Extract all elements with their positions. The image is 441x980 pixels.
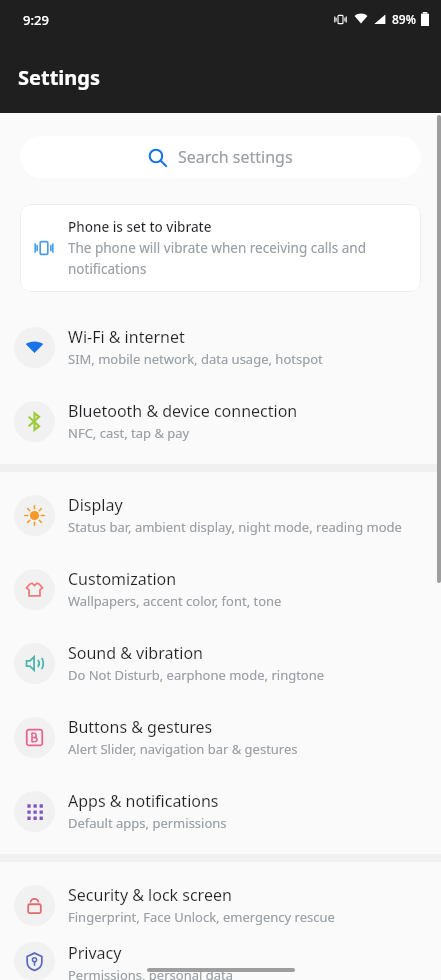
staticText: Apps & notifications (68, 790, 219, 812)
button[interactable]: Apps & notifications (0, 774, 441, 848)
staticText: Do Not Disturb, earphone mode, ringtone (68, 666, 325, 684)
staticText: Default apps, permissions (68, 814, 227, 832)
staticText: Security & lock screen (68, 884, 232, 906)
staticText: Settings (18, 64, 100, 91)
staticText: SIM, mobile network, data usage, hotspot (68, 350, 323, 368)
staticText: Permissions, personal data (68, 966, 233, 980)
staticText: 9:29 (23, 11, 49, 29)
staticText: Phone is set to vibrate (68, 218, 212, 236)
staticText: Status bar, ambient display, night mode,… (68, 518, 402, 536)
staticText: Privacy (68, 942, 122, 964)
button[interactable]: Security & lock screen (0, 868, 441, 942)
staticText: Search settings (178, 146, 293, 168)
staticText: Display (68, 494, 123, 516)
staticText: The phone will vibrate when receiving ca… (68, 239, 399, 278)
staticText: Bluetooth & device connection (68, 400, 298, 422)
staticText: Customization (68, 568, 177, 590)
button[interactable]: Sound & vibration (0, 626, 441, 700)
staticText: Fingerprint, Face Unlock, emergency resc… (68, 908, 335, 926)
button[interactable]: Phone is set to vibrate (20, 204, 421, 292)
button[interactable]: Bluetooth & device connection (0, 384, 441, 458)
staticText: Alert Slider, navigation bar & gestures (68, 740, 298, 758)
button[interactable]: Search settings (20, 136, 421, 178)
staticText: NFC, cast, tap & pay (68, 424, 190, 442)
button[interactable]: Privacy (0, 942, 441, 980)
staticText: Sound & vibration (68, 642, 203, 664)
staticText: Buttons & gestures (68, 716, 213, 738)
button[interactable]: Wi-Fi & internet (0, 310, 441, 384)
staticText: Wi-Fi & internet (68, 326, 185, 348)
staticText: Wallpapers, accent color, font, tone (68, 592, 282, 610)
staticText: 89% (392, 11, 416, 27)
button[interactable]: Buttons & gestures (0, 700, 441, 774)
button[interactable]: Customization (0, 552, 441, 626)
button[interactable]: Display (0, 478, 441, 552)
